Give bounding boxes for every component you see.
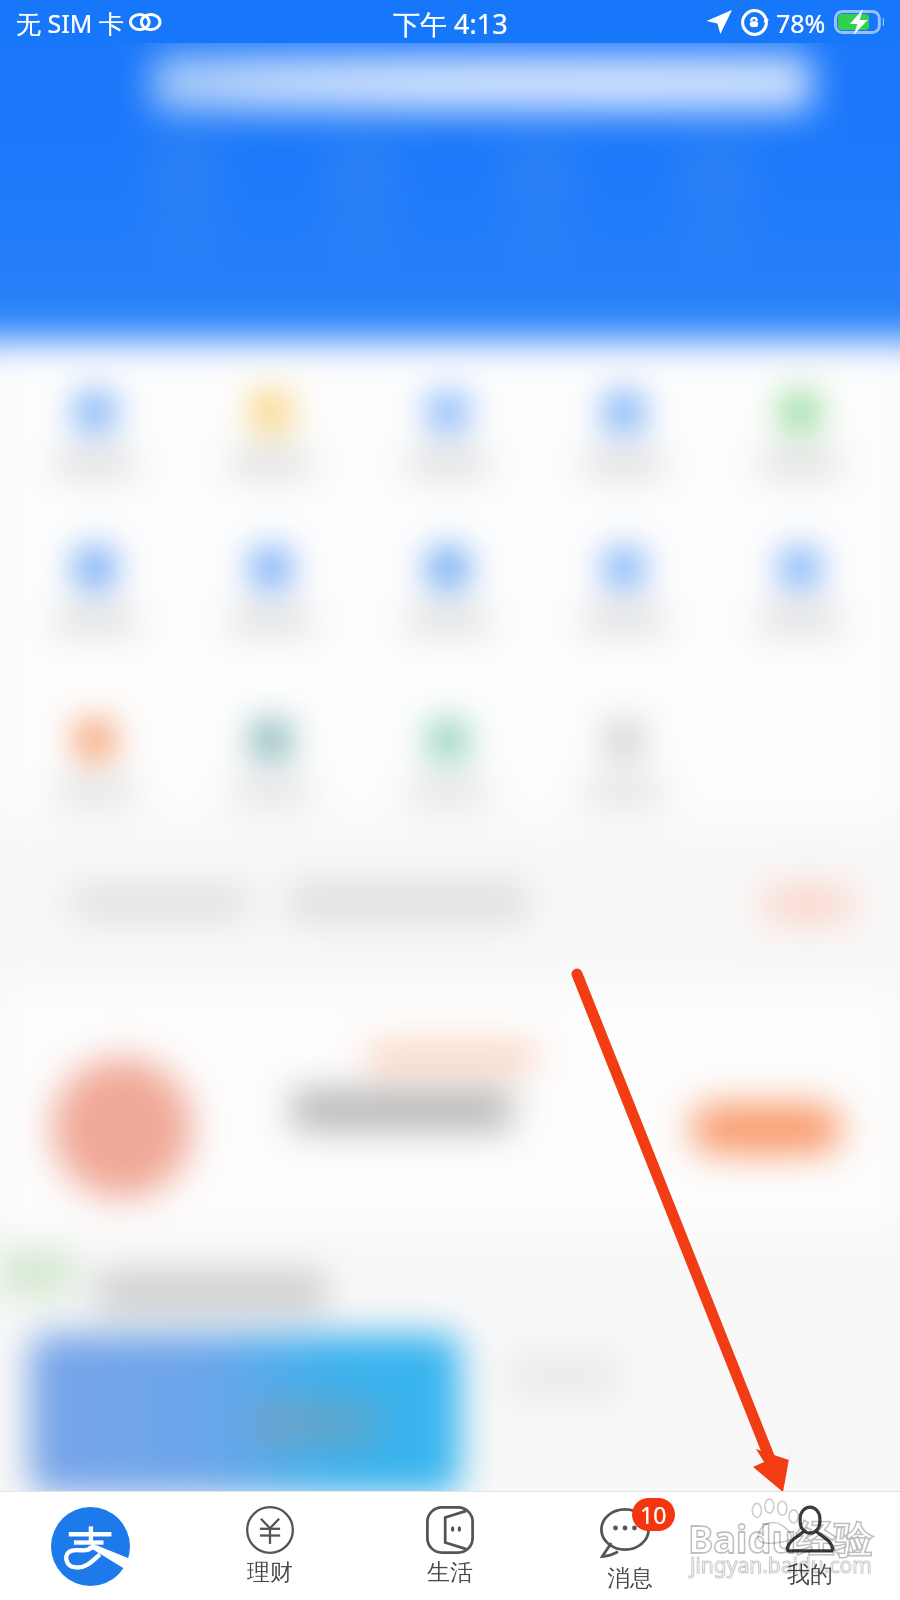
staticText: 下午 4:13 (393, 5, 508, 42)
staticText: 生活 (427, 1558, 473, 1587)
staticText: 10 (640, 1499, 667, 1530)
staticText: Baidu经验 (688, 1512, 873, 1564)
staticText: 78% (776, 6, 826, 40)
button[interactable]: 10 (540, 1492, 720, 1600)
button[interactable]: 我的 (720, 1492, 900, 1600)
staticText: jingyan.baidu.com (690, 1551, 872, 1580)
button[interactable]: 首页 (0, 1492, 180, 1600)
button[interactable]: 生活 (360, 1492, 540, 1600)
staticText: 我的 (787, 1560, 833, 1589)
staticText: 理财 (247, 1558, 293, 1587)
staticText: 消息 (607, 1564, 653, 1593)
staticText: 无 SIM 卡 (16, 6, 124, 40)
button[interactable]: 理财 (180, 1492, 360, 1600)
